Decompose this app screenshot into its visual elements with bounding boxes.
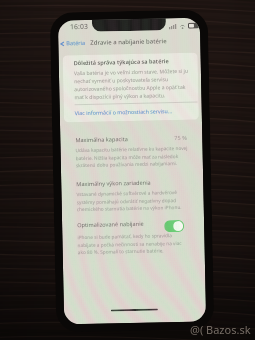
staticText: @( Bazos.sk xyxy=(190,322,251,337)
staticText: Zdravie a nabíjanie batérie xyxy=(90,37,167,47)
staticText: iPhone si bude pamätať, kedy ho spravidl… xyxy=(77,232,190,255)
button[interactable]: Maximálna kapacita xyxy=(75,134,187,144)
staticText: Vaša batéria je vo veľmi zlom stave. Môž… xyxy=(74,68,193,100)
staticText: Vstavané dynamické softvérové a hardvéro… xyxy=(76,189,189,212)
staticText: Optimalizované nabíjanie xyxy=(77,220,144,229)
staticText: 75 % xyxy=(174,134,187,142)
staticText: Maximálny výkon zariadenia xyxy=(76,179,151,188)
button[interactable]: Batéria xyxy=(59,39,86,47)
button[interactable]: Optimalizované nabíjanie xyxy=(77,217,189,231)
button[interactable]: Viac informácií o možnostiach servisu… xyxy=(75,107,173,116)
staticText: Maximálna kapacita xyxy=(75,135,128,144)
staticText: Batéria xyxy=(66,39,85,47)
staticText: 16:03 xyxy=(70,22,88,32)
staticText: Udáva kapacitu batérie relatívne ku kapa… xyxy=(75,145,188,168)
staticText: Dôležitá správa týkajúca sa batérie xyxy=(74,57,169,67)
